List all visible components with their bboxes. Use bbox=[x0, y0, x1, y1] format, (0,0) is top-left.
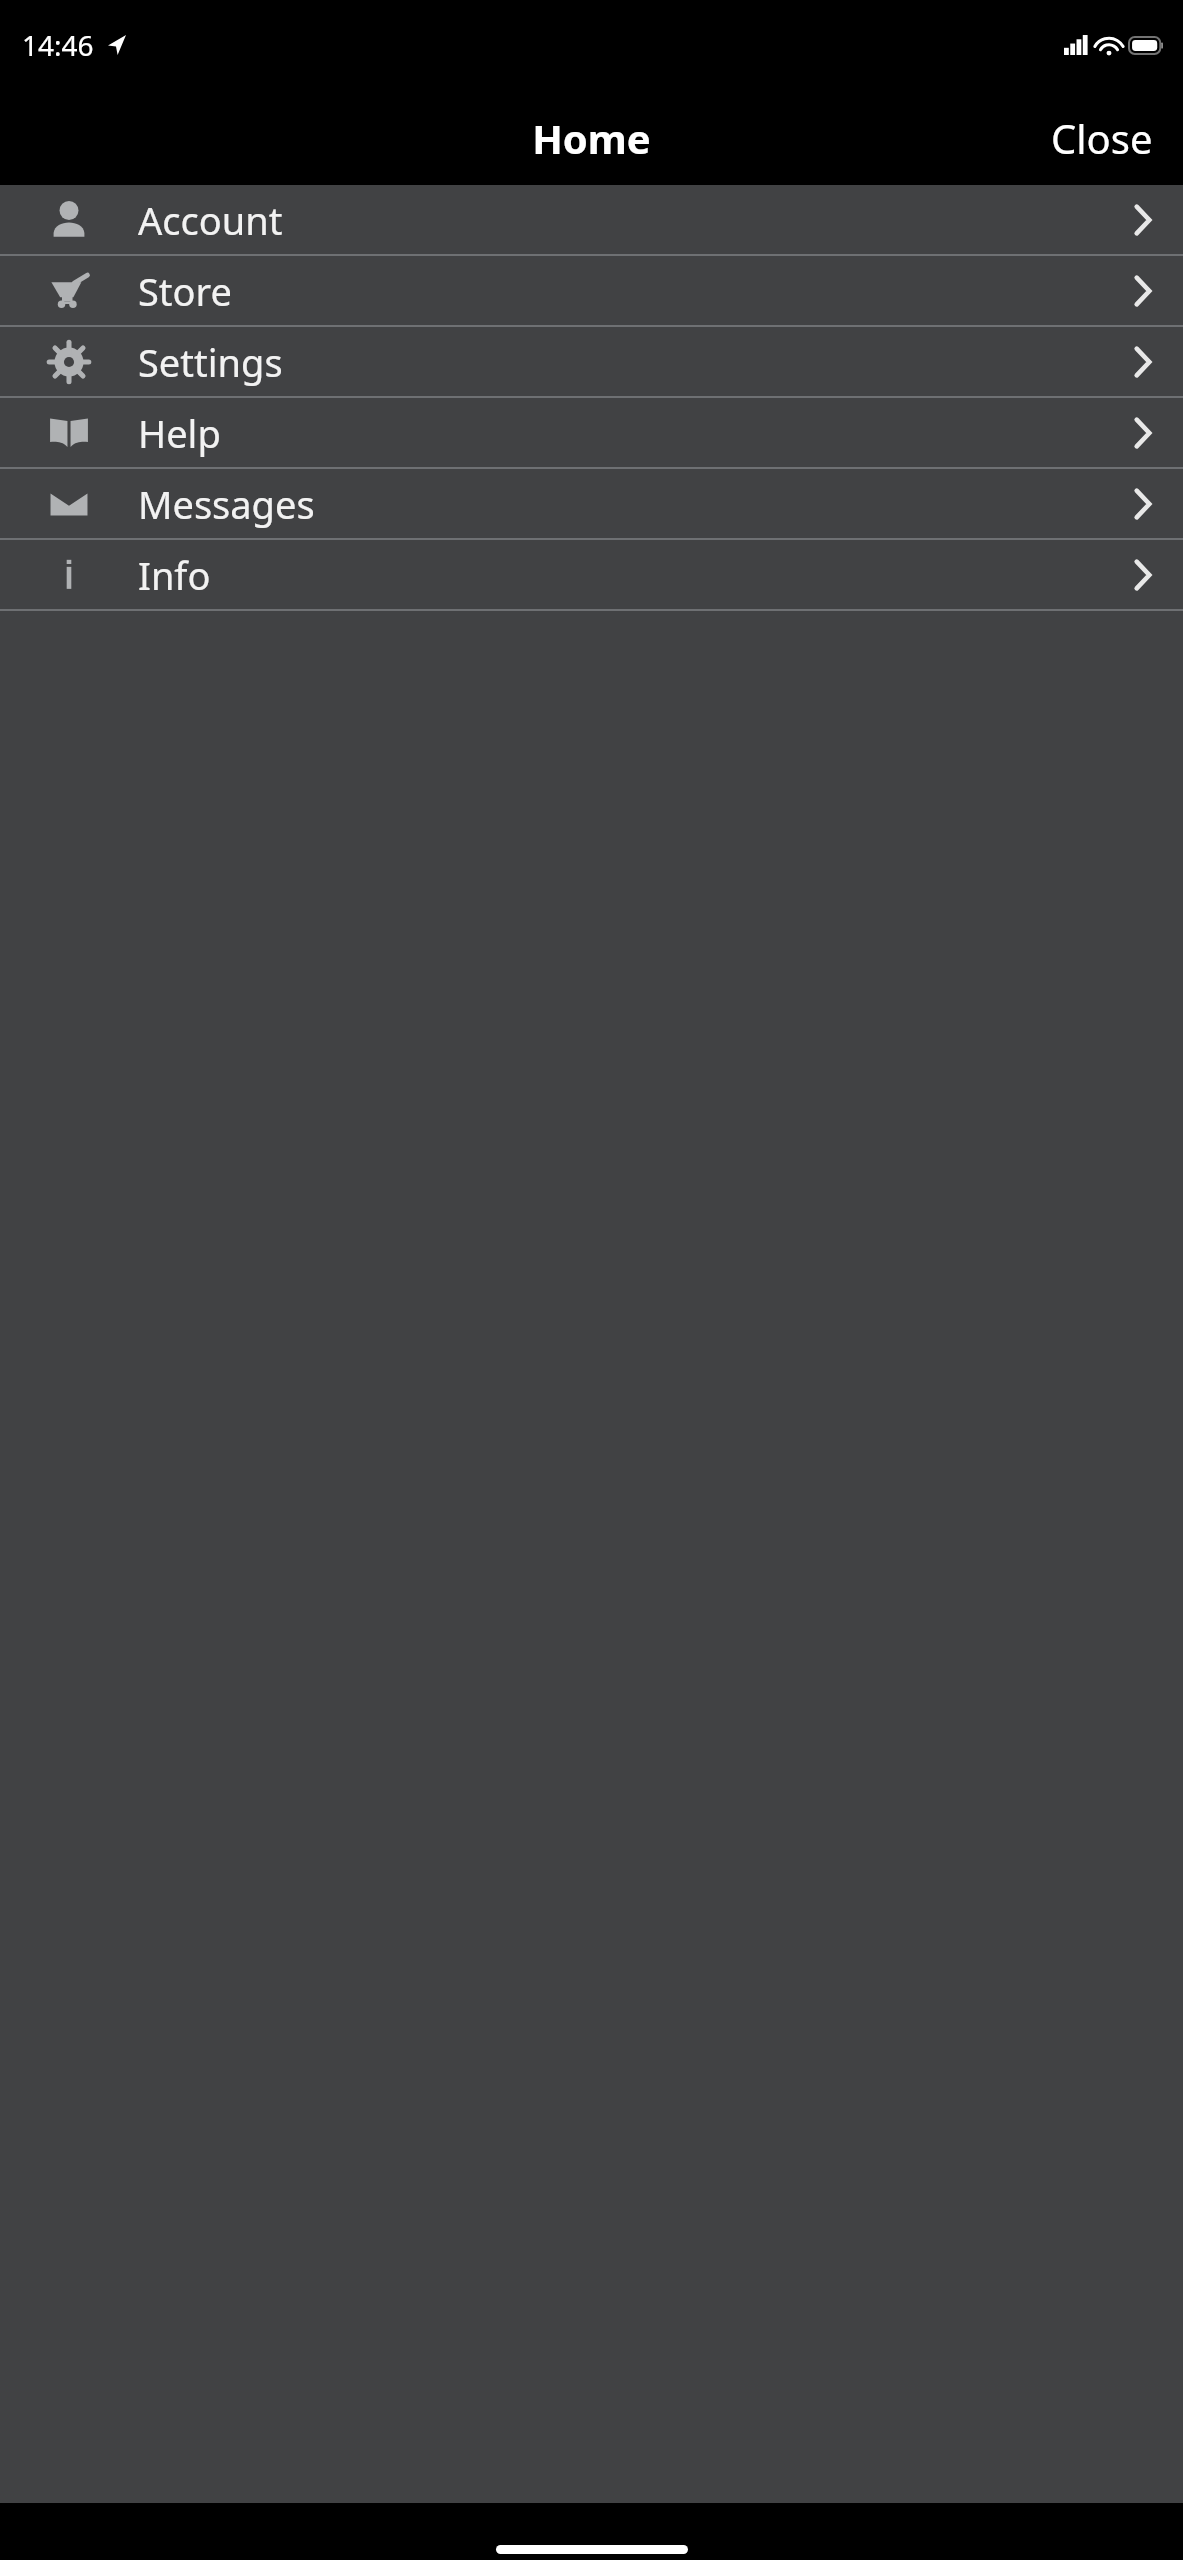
button[interactable]: Help bbox=[0, 398, 1183, 467]
button[interactable]: Info bbox=[0, 540, 1183, 609]
staticText: 14:46 bbox=[22, 26, 94, 64]
staticText: Messages bbox=[138, 478, 315, 530]
staticText: Help bbox=[138, 407, 221, 459]
staticText: Home bbox=[532, 111, 651, 165]
staticText: Close bbox=[1051, 111, 1153, 165]
staticText: Settings bbox=[138, 336, 283, 388]
staticText: Info bbox=[138, 549, 211, 601]
button[interactable]: Account bbox=[0, 185, 1183, 254]
button[interactable]: Messages bbox=[0, 469, 1183, 538]
button[interactable]: Close bbox=[1021, 97, 1183, 179]
button[interactable]: Settings bbox=[0, 327, 1183, 396]
staticText: Store bbox=[138, 265, 232, 317]
staticText: Account bbox=[138, 194, 283, 246]
button[interactable]: Store bbox=[0, 256, 1183, 325]
